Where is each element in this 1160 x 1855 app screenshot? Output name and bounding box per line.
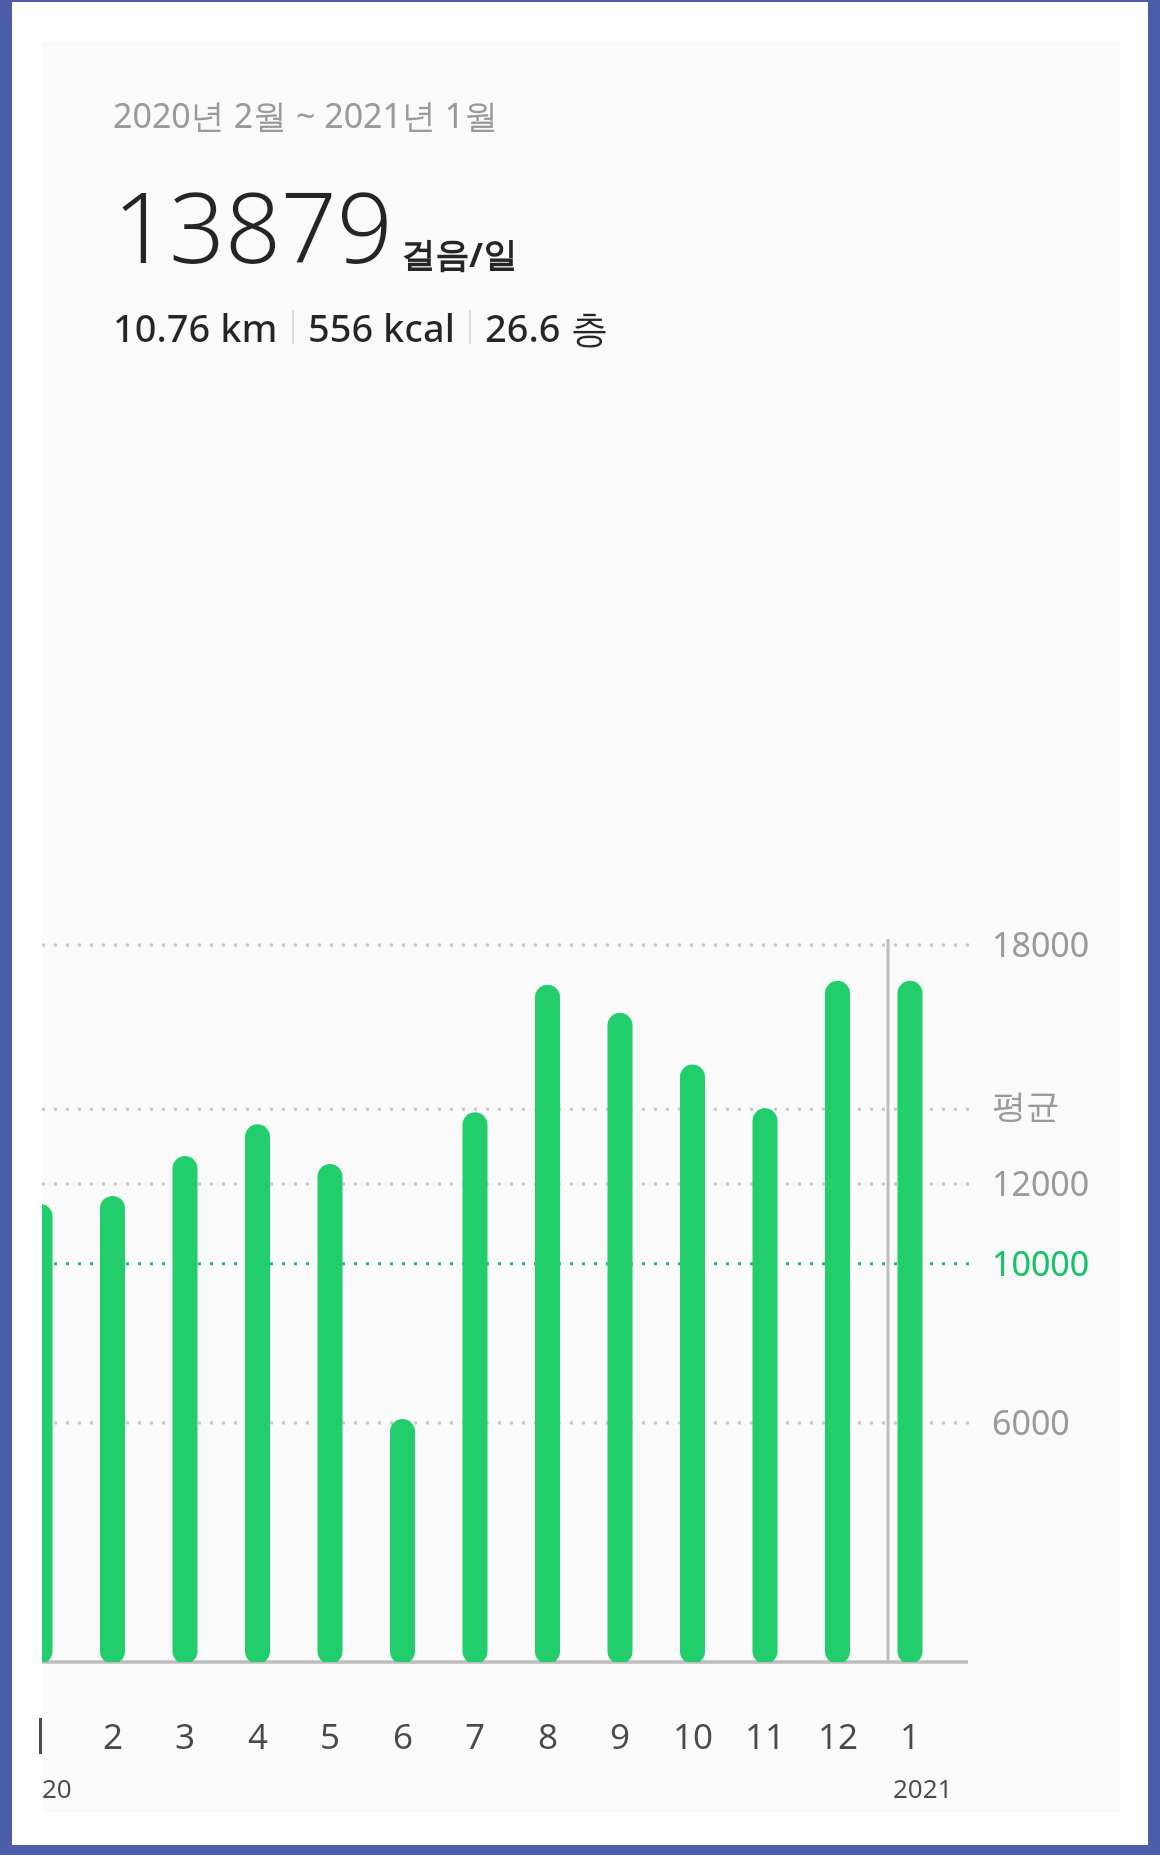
- staticText: 7: [443, 1712, 507, 1760]
- staticText: 10000: [992, 1240, 1090, 1286]
- staticText: 12: [806, 1712, 870, 1760]
- staticText: 9: [588, 1712, 652, 1760]
- staticText: 18000: [992, 921, 1090, 967]
- staticText: 평균: [992, 1085, 1060, 1128]
- staticText: 10.76 km: [113, 301, 278, 353]
- button[interactable]: 2020년 2월 ~ 2021년 1월: [113, 92, 609, 353]
- staticText: 4: [226, 1712, 290, 1760]
- staticText: 걸음/일: [401, 231, 518, 277]
- staticText: 13879: [113, 158, 393, 291]
- button[interactable]: 월별 걸음 수 막대 그래프: [42, 42, 1120, 1812]
- staticText: 12000: [992, 1160, 1090, 1206]
- staticText: 20: [42, 1770, 72, 1805]
- staticText: 3: [153, 1712, 217, 1760]
- staticText: 26.6 층: [485, 301, 609, 353]
- staticText: 556 kcal: [308, 301, 455, 353]
- staticText: 5: [298, 1712, 362, 1760]
- staticText: 2: [81, 1712, 145, 1760]
- staticText: 10: [661, 1712, 725, 1760]
- staticText: 2021: [893, 1770, 953, 1805]
- staticText: 6000: [992, 1399, 1070, 1445]
- staticText: 8: [516, 1712, 580, 1760]
- staticText: 2020년 2월 ~ 2021년 1월: [113, 92, 499, 138]
- staticText: 1: [878, 1712, 942, 1760]
- staticText: 6: [371, 1712, 435, 1760]
- staticText: 11: [733, 1712, 797, 1760]
